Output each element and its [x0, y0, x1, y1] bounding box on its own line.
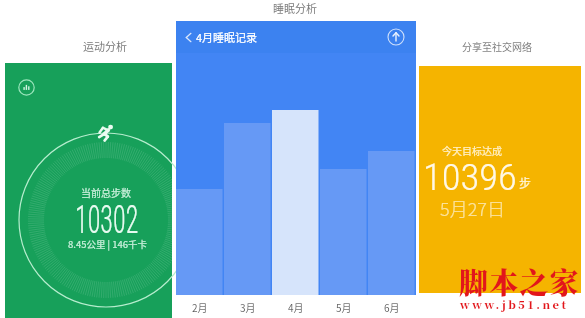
button[interactable]: 今天目标达成 — [419, 66, 581, 293]
staticText: 10302 — [75, 198, 139, 243]
button[interactable]: Statistics — [5, 63, 172, 318]
staticText: 4月 — [288, 300, 304, 314]
button[interactable]: 5月 — [320, 295, 368, 318]
staticText: 运动分析 — [17, 38, 193, 54]
button[interactable]: Upload — [387, 28, 405, 46]
staticText: 当前总步数 — [81, 185, 131, 199]
staticText: www.jb51.net — [460, 296, 569, 312]
staticText: 脚本之家 — [459, 261, 580, 303]
button[interactable]: Back — [176, 21, 200, 53]
staticText: 分享至社交网络 — [416, 39, 578, 53]
staticText: 2月 — [192, 300, 208, 314]
staticText: 4月睡眠记录 — [196, 29, 258, 45]
button[interactable]: 2月 — [176, 295, 224, 318]
staticText: 步 — [519, 174, 532, 191]
staticText: 睡眠分析 — [175, 0, 415, 16]
staticText: 今天目标达成 — [442, 143, 502, 157]
staticText: 3月 — [240, 300, 256, 314]
button[interactable]: 6月 — [368, 295, 416, 318]
staticText: 5月 — [336, 300, 352, 314]
staticText: 6月 — [384, 300, 400, 314]
button[interactable]: Statistics — [18, 79, 35, 96]
button[interactable]: 4月 — [272, 295, 320, 318]
button[interactable]: 3月 — [224, 295, 272, 318]
staticText: 5月27日 — [440, 195, 505, 221]
staticText: 8.45公里 | 146千卡 — [68, 237, 148, 251]
staticText: 10396 — [423, 157, 517, 199]
